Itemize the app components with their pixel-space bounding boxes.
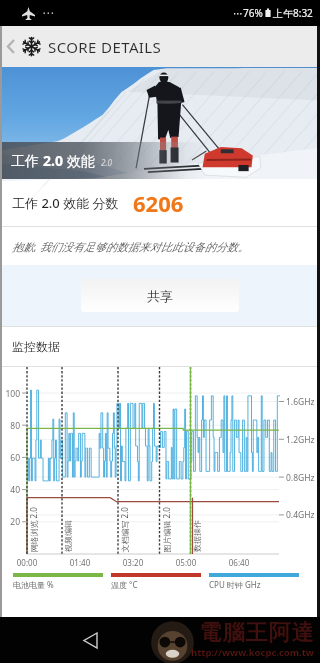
staticText: 06:40 — [223, 557, 255, 568]
staticText: 0.8GHz — [286, 472, 315, 484]
staticText: 6206 — [133, 188, 184, 218]
staticText: 网络浏览 2.0 — [27, 506, 38, 552]
staticText: 40 — [0, 484, 20, 496]
staticText: 2.0 — [43, 151, 63, 170]
staticText: 20 — [0, 516, 20, 528]
staticText: 电池电量 % — [13, 579, 54, 590]
staticText: 03:20 — [117, 557, 149, 568]
staticText: 抱歉, 我们没有足够的数据来对比此设备的分数。 — [12, 239, 249, 254]
staticText: 01:40 — [64, 557, 96, 568]
staticText: ⋯76% — [233, 6, 263, 20]
staticText: http://www.kocpc.com.tw — [191, 646, 314, 659]
staticText: 数据操作 — [192, 520, 202, 552]
button[interactable]: Back — [68, 617, 112, 663]
button[interactable]: Back — [0, 26, 22, 67]
staticText: SCORE DETAILS — [48, 37, 162, 57]
staticText: 80 — [0, 420, 20, 432]
staticText: 共享 — [147, 288, 173, 304]
staticText: ⋯ — [42, 6, 54, 20]
staticText: 05:00 — [170, 557, 202, 568]
staticText: 00:00 — [11, 557, 43, 568]
staticText: 效能 — [63, 151, 95, 170]
staticText: 1.6GHz — [286, 396, 315, 408]
staticText: 電腦王阿達 — [199, 619, 314, 647]
staticText: CPU 时钟 GHz — [209, 579, 261, 590]
staticText: 视频编辑 — [63, 520, 73, 552]
staticText: 2.0 — [101, 157, 112, 168]
staticText: 文档编写 2.0 — [118, 506, 129, 552]
staticText: 工作 — [11, 151, 43, 170]
staticText: 1.2GHz — [286, 434, 315, 446]
staticText: 0.4GHz — [286, 509, 315, 521]
staticText: 100 — [0, 388, 20, 400]
staticText: 温度 °C — [111, 579, 138, 590]
staticText: 工作 2.0 效能 分数 — [12, 194, 119, 212]
staticText: 图片编辑 2.0 — [160, 506, 171, 552]
staticText: 上午8:32 — [273, 6, 313, 20]
button[interactable]: 共享 — [81, 279, 239, 312]
staticText: 监控数据 — [12, 339, 60, 354]
staticText: 60 — [0, 452, 20, 464]
